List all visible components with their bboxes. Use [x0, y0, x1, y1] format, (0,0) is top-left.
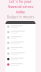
staticText: today: [16, 9, 25, 14]
staticText: Let's fix your: [9, 0, 32, 4]
staticText: Budget in minutes: [7, 15, 34, 19]
staticText: financial stress: [7, 4, 33, 9]
